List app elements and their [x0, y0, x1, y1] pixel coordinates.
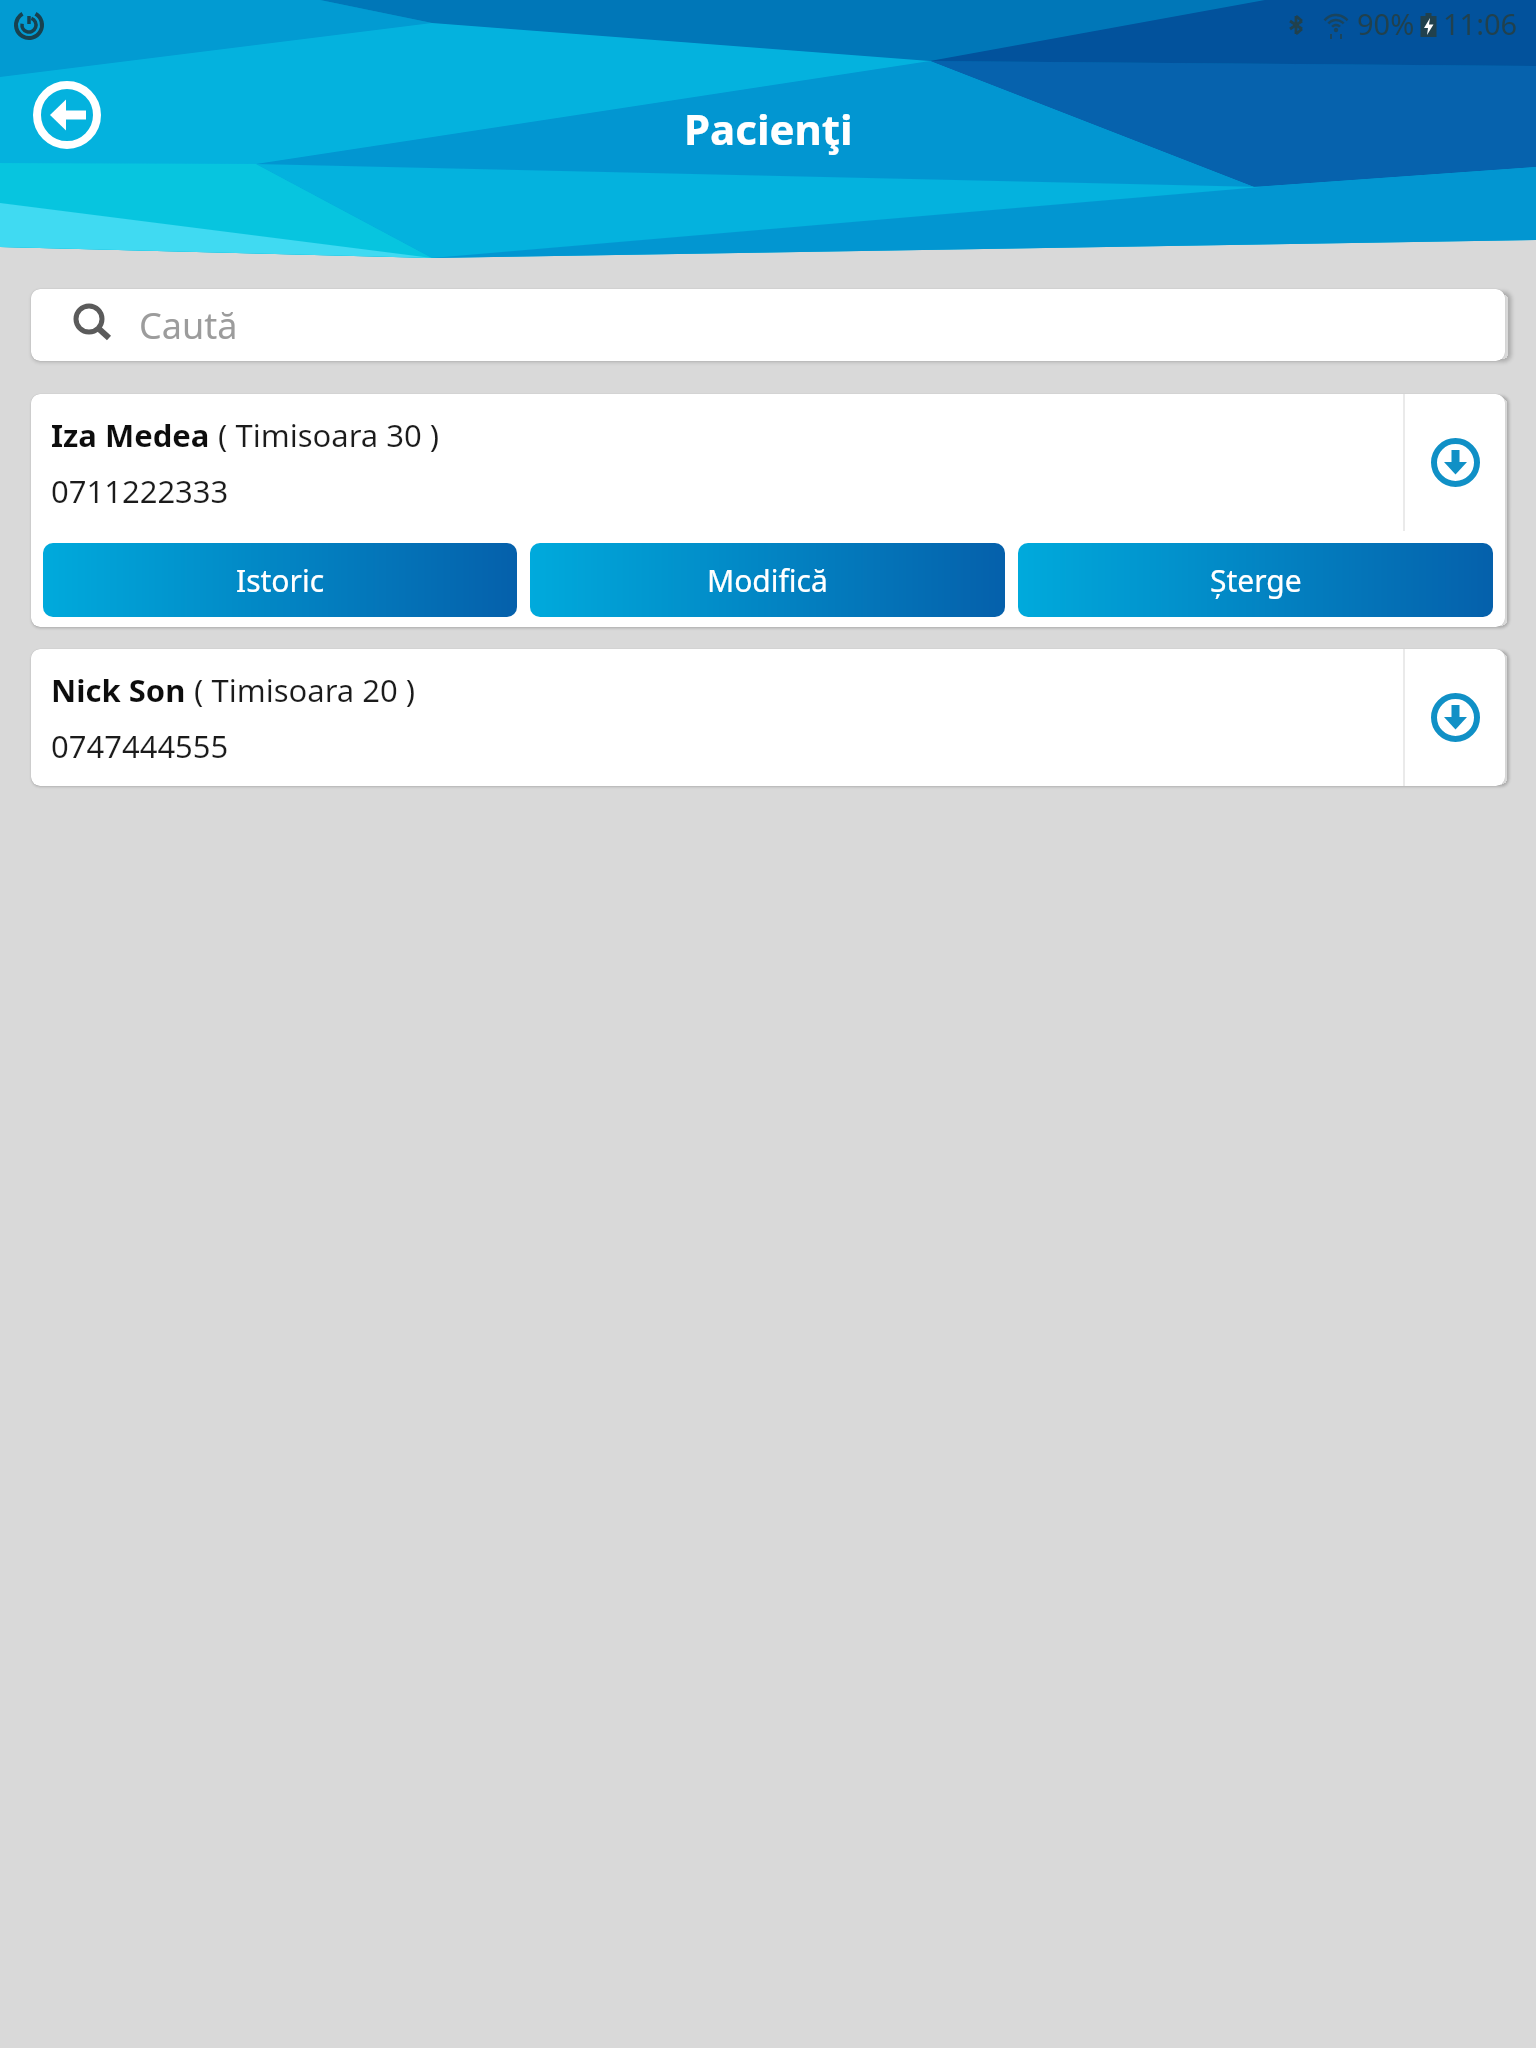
- button[interactable]: Download: [1405, 394, 1505, 531]
- button[interactable]: Download: [1405, 649, 1505, 786]
- staticText: Nick Son: [51, 669, 186, 711]
- staticText: Caută: [139, 301, 238, 350]
- button[interactable]: Istoric: [43, 543, 517, 617]
- staticText: 11:06: [1443, 4, 1518, 43]
- staticText: ( Timisoara 30 ): [210, 414, 440, 456]
- staticText: Istoric: [236, 560, 325, 601]
- staticText: 0747444555: [51, 725, 229, 767]
- staticText: 0711222333: [51, 470, 229, 512]
- staticText: Șterge: [1210, 560, 1302, 601]
- button[interactable]: Caută: [31, 289, 1505, 361]
- staticText: Iza Medea: [51, 414, 210, 456]
- staticText: Modifică: [707, 560, 828, 601]
- staticText: ( Timisoara 20 ): [186, 669, 416, 711]
- button[interactable]: Șterge: [1018, 543, 1493, 617]
- staticText: 90%: [1357, 4, 1415, 43]
- staticText: Pacienţi: [684, 100, 853, 157]
- button[interactable]: Back: [33, 81, 101, 149]
- button[interactable]: Modifică: [530, 543, 1005, 617]
